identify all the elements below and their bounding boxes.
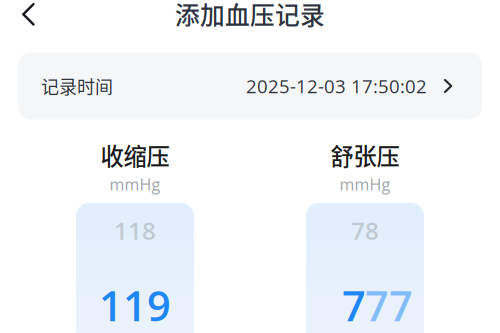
staticText: 舒张压 [330, 138, 399, 172]
staticText: 2025-12-03 17:50:02 [246, 73, 427, 99]
staticText: 77 [365, 277, 413, 333]
button[interactable]: Back [9, 0, 49, 33]
staticText: 添加血压记录 [175, 0, 325, 32]
staticText: mmHg [109, 173, 160, 195]
staticText: 118 [114, 214, 156, 247]
staticText: 收缩压 [100, 138, 169, 172]
staticText: mmHg [339, 173, 390, 195]
button[interactable]: 记录时间 [18, 52, 482, 119]
staticText: 119 [99, 277, 171, 333]
staticText: 7 [342, 277, 366, 333]
staticText: 78 [351, 214, 379, 247]
staticText: 记录时间 [41, 73, 113, 99]
